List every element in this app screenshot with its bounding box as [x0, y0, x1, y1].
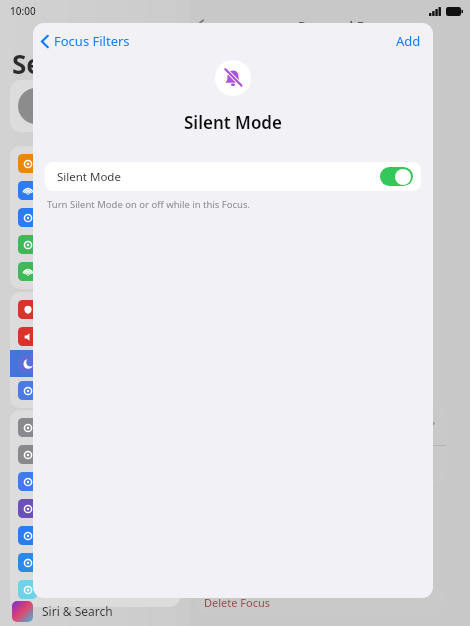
- button[interactable]: Silent Mode toggle, on: [380, 167, 413, 186]
- staticText: Personal Focus: [298, 17, 393, 35]
- button[interactable]: Add: [384, 26, 433, 56]
- staticText: Delete Focus: [204, 595, 271, 610]
- button[interactable]: Focus Filters: [33, 28, 138, 54]
- staticText: Turn Silent Mode on or off while in this…: [47, 198, 251, 211]
- staticText: Se: [12, 46, 42, 81]
- staticText: Focus Filters: [54, 32, 130, 50]
- staticText: Silent Mode: [57, 169, 121, 185]
- other: Silent Mode: [223, 68, 243, 88]
- staticText: Siri & Search: [42, 603, 113, 619]
- staticText: 10:00: [10, 4, 36, 18]
- staticText: Add: [396, 32, 421, 50]
- button[interactable]: Silent Mode: [45, 162, 421, 191]
- staticText: Silent Mode: [184, 111, 282, 134]
